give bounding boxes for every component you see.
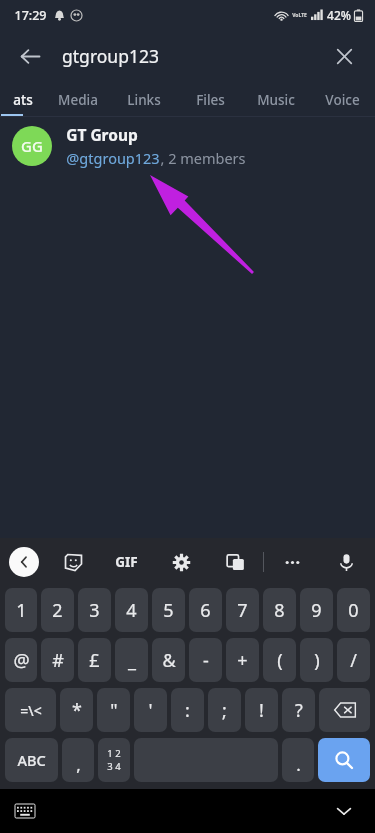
button[interactable]: Stickers [58, 547, 88, 577]
staticText: 17:29 [14, 7, 47, 24]
button[interactable]: Voice input [331, 547, 361, 577]
staticText: : [185, 698, 190, 723]
button[interactable]: Clear search [323, 35, 365, 77]
staticText: ? [295, 698, 303, 723]
button[interactable]: Links [111, 82, 177, 117]
staticText: 1 2 [107, 747, 121, 760]
button[interactable]: Keyboard [8, 794, 42, 828]
button[interactable]: . [282, 738, 314, 782]
staticText: 42% [327, 7, 351, 23]
staticText: VoLTE [292, 12, 307, 19]
staticText: =\< [20, 701, 42, 720]
button[interactable]: More options [277, 547, 307, 577]
button[interactable]: ' [134, 688, 167, 732]
staticText: , 2 members [160, 148, 246, 168]
button[interactable]: Backspace [319, 688, 370, 732]
staticText: 9 [311, 598, 322, 623]
staticText: Voice [325, 91, 360, 109]
button[interactable]: ; [208, 688, 241, 732]
button[interactable]: , [62, 738, 94, 782]
staticText: , [76, 753, 81, 776]
button[interactable]: 7 [226, 588, 259, 632]
staticText: 3 [89, 598, 100, 623]
button[interactable]: # [41, 638, 74, 682]
staticText: & [162, 648, 176, 673]
button[interactable]: 3 [78, 588, 111, 632]
button[interactable]: 1 2 [98, 738, 130, 782]
button[interactable]: ats [0, 82, 45, 117]
button[interactable]: 2 [41, 588, 74, 632]
button[interactable]: Voice [309, 82, 375, 117]
button[interactable]: Settings [166, 547, 196, 577]
staticText: GT Group [66, 124, 138, 145]
button[interactable]: Expand toolbar [9, 547, 39, 577]
button[interactable]: - [189, 638, 222, 682]
button[interactable]: & [152, 638, 185, 682]
staticText: Media [58, 91, 98, 109]
staticText: 2 [52, 598, 63, 623]
button[interactable]: Hide keyboard [327, 794, 361, 828]
button[interactable]: 9 [300, 588, 333, 632]
button[interactable]: / [337, 638, 370, 682]
button[interactable]: Back [8, 34, 52, 78]
button[interactable]: : [171, 688, 204, 732]
button[interactable]: _ [115, 638, 148, 682]
staticText: - [203, 648, 209, 673]
button[interactable]: GIF [111, 549, 142, 575]
button[interactable]: 0 [337, 588, 370, 632]
button[interactable]: GG [0, 117, 375, 175]
staticText: # [52, 648, 64, 673]
staticText: @gtgroup123 [66, 148, 160, 168]
button[interactable]: ABC [5, 738, 58, 782]
staticText: 4 [126, 598, 137, 623]
staticText: ats [13, 91, 33, 109]
staticText: 5 [163, 598, 174, 623]
staticText: _ [128, 648, 136, 673]
staticText: . [296, 753, 301, 776]
button[interactable]: @ [5, 638, 37, 682]
button[interactable]: 1 [5, 588, 37, 632]
button[interactable]: 5 [152, 588, 185, 632]
button[interactable]: 4 [115, 588, 148, 632]
staticText: £ [89, 648, 100, 673]
staticText: 6 [200, 598, 211, 623]
button[interactable]: Files [177, 82, 243, 117]
staticText: 7 [237, 598, 248, 623]
button[interactable]: ( [263, 638, 296, 682]
button[interactable]: + [226, 638, 259, 682]
staticText: ABC [17, 750, 46, 770]
staticText: 8 [274, 598, 285, 623]
staticText: ; [222, 698, 227, 723]
staticText: 3 4 [107, 760, 121, 773]
staticText: Music [257, 91, 295, 109]
staticText: ! [259, 698, 264, 723]
button[interactable]: * [60, 688, 93, 732]
button[interactable]: £ [78, 638, 111, 682]
button[interactable]: ? [282, 688, 315, 732]
button[interactable]: Search [318, 738, 370, 782]
staticText: 1 [16, 598, 27, 623]
staticText: ) [314, 648, 320, 673]
staticText: * [72, 698, 82, 723]
staticText: + [237, 648, 248, 673]
staticText: Links [127, 91, 161, 109]
button[interactable]: ) [300, 638, 333, 682]
staticText: ( [277, 648, 283, 673]
button[interactable]: Music [243, 82, 309, 117]
staticText: @ [13, 648, 30, 673]
button[interactable]: gtgroup123 [62, 44, 323, 68]
staticText: 0 [348, 598, 359, 623]
button[interactable]: ! [245, 688, 278, 732]
staticText: GG [21, 136, 43, 156]
button[interactable]: Media [45, 82, 111, 117]
staticText: ' [148, 698, 153, 723]
button[interactable]: 8 [263, 588, 296, 632]
staticText: gtgroup123 [62, 44, 159, 68]
staticText: / [350, 648, 357, 673]
button[interactable]: Translate [220, 547, 250, 577]
button[interactable]: " [97, 688, 130, 732]
button[interactable]: =\< [5, 688, 56, 732]
staticText: Files [196, 91, 225, 109]
button[interactable]: 6 [189, 588, 222, 632]
